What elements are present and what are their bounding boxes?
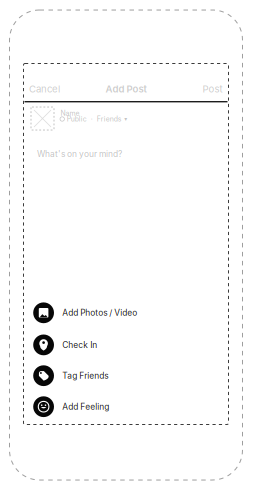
button[interactable]: Add Feeling — [33, 396, 213, 417]
staticText: Public · Friends — [67, 115, 122, 123]
staticText: ▾ — [124, 116, 127, 122]
staticText: Name — [60, 109, 79, 117]
button[interactable]: Check In — [33, 334, 213, 355]
staticText: Add Feeling — [62, 402, 109, 412]
button[interactable]: Cancel — [29, 82, 73, 96]
staticText: Post — [202, 83, 222, 95]
staticText: Check In — [62, 340, 97, 350]
staticText: Cancel — [29, 83, 60, 95]
staticText: Tag Friends — [62, 371, 108, 381]
button[interactable]: Tag Friends — [33, 365, 213, 386]
button[interactable]: Post — [192, 82, 222, 96]
staticText: Add Photos / Video — [62, 308, 137, 318]
staticText: Add Post — [105, 83, 146, 95]
button[interactable]: Add Photos / Video — [33, 302, 213, 323]
staticText: What's on your mind? — [37, 149, 122, 159]
